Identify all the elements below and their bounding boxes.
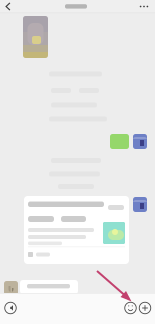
button[interactable]: Emoji xyxy=(121,296,139,320)
button[interactable]: Voice message xyxy=(0,296,20,320)
button[interactable]: More actions xyxy=(136,296,154,320)
button[interactable]: More xyxy=(135,0,153,13)
button[interactable]: Back xyxy=(0,0,16,13)
